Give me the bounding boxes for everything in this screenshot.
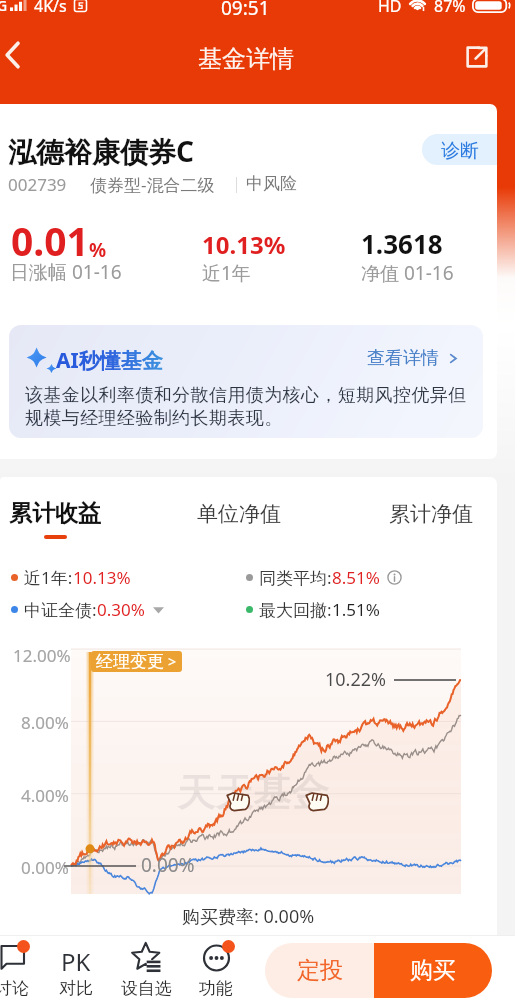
staticText: 该基金以利率债和分散信用债为核心，短期风控优异但 规模与经理经验制约长期表现。 — [25, 384, 467, 430]
staticText: > — [168, 652, 177, 671]
button[interactable]: 经理变更 — [91, 651, 182, 672]
staticText: 10.13% — [73, 566, 131, 589]
staticText: 经理变更 — [96, 651, 164, 672]
staticText: 87% — [434, 0, 466, 15]
staticText: 10.22% — [325, 667, 386, 692]
button[interactable]: 功能 — [183, 939, 249, 1002]
staticText: 功能 — [199, 978, 233, 999]
staticText: 净值 01-16 — [361, 260, 454, 286]
staticText: 累计净值 — [389, 501, 473, 527]
staticText: HD — [378, 0, 402, 15]
staticText: PK — [61, 945, 91, 971]
button[interactable]: Back — [0, 33, 35, 77]
staticText: 10.13% — [202, 228, 286, 261]
staticText: % — [89, 237, 107, 263]
staticText: 天天基金 — [177, 769, 329, 817]
staticText: 同类平均: — [259, 566, 332, 589]
button[interactable]: AI秒懂基金 — [9, 325, 483, 438]
staticText: 泓德裕康债券C — [8, 132, 194, 170]
staticText: 5G — [0, 0, 8, 15]
staticText: 12.00% — [13, 644, 71, 667]
staticText: 002739 — [8, 173, 67, 196]
staticText: 09:51 — [221, 0, 270, 15]
staticText: 中风险 — [246, 173, 297, 194]
button[interactable]: PK — [43, 939, 109, 1002]
staticText: 4.00% — [21, 784, 69, 807]
button[interactable]: 设自选 — [113, 939, 179, 1002]
staticText: 1.51% — [332, 598, 380, 621]
staticText: 8.00% — [21, 711, 69, 734]
staticText: 0.30% — [97, 598, 145, 621]
button[interactable]: 定投 — [265, 943, 374, 998]
staticText: 定投 — [297, 956, 343, 985]
staticText: 购买 — [410, 956, 456, 985]
staticText: 8.51% — [332, 566, 380, 589]
staticText: 讨论 — [0, 978, 29, 999]
staticText: 中证全债: — [24, 598, 97, 621]
staticText: 最大回撤: — [259, 598, 332, 621]
staticText: 0.00% — [21, 856, 69, 879]
button[interactable]: 讨论 — [0, 939, 45, 1002]
staticText: 近1年 — [202, 260, 251, 286]
button[interactable]: Share — [455, 35, 499, 79]
staticText: 单位净值 — [197, 501, 281, 527]
staticText: 对比 — [59, 978, 93, 999]
staticText: AI秒懂基金 — [56, 346, 163, 375]
staticText: 查看详情 — [367, 347, 439, 370]
staticText: 日涨幅 01-16 — [10, 259, 122, 285]
staticText: 4K/s — [34, 0, 67, 15]
staticText: 设自选 — [121, 978, 172, 999]
button[interactable]: 诊断 — [422, 134, 497, 165]
staticText: 基金详情 — [198, 44, 294, 74]
staticText: 累计收益 — [9, 499, 101, 528]
staticText: 债券型-混合二级 — [90, 173, 215, 196]
staticText: 0.00% — [141, 852, 195, 878]
staticText: 购买费率: 0.00% — [182, 904, 315, 929]
button[interactable]: 购买 — [374, 943, 492, 998]
staticText: 0.01 — [11, 214, 89, 267]
staticText: 1.3618 — [361, 226, 443, 261]
staticText: 近1年: — [24, 566, 73, 589]
staticText: 诊断 — [441, 139, 479, 163]
